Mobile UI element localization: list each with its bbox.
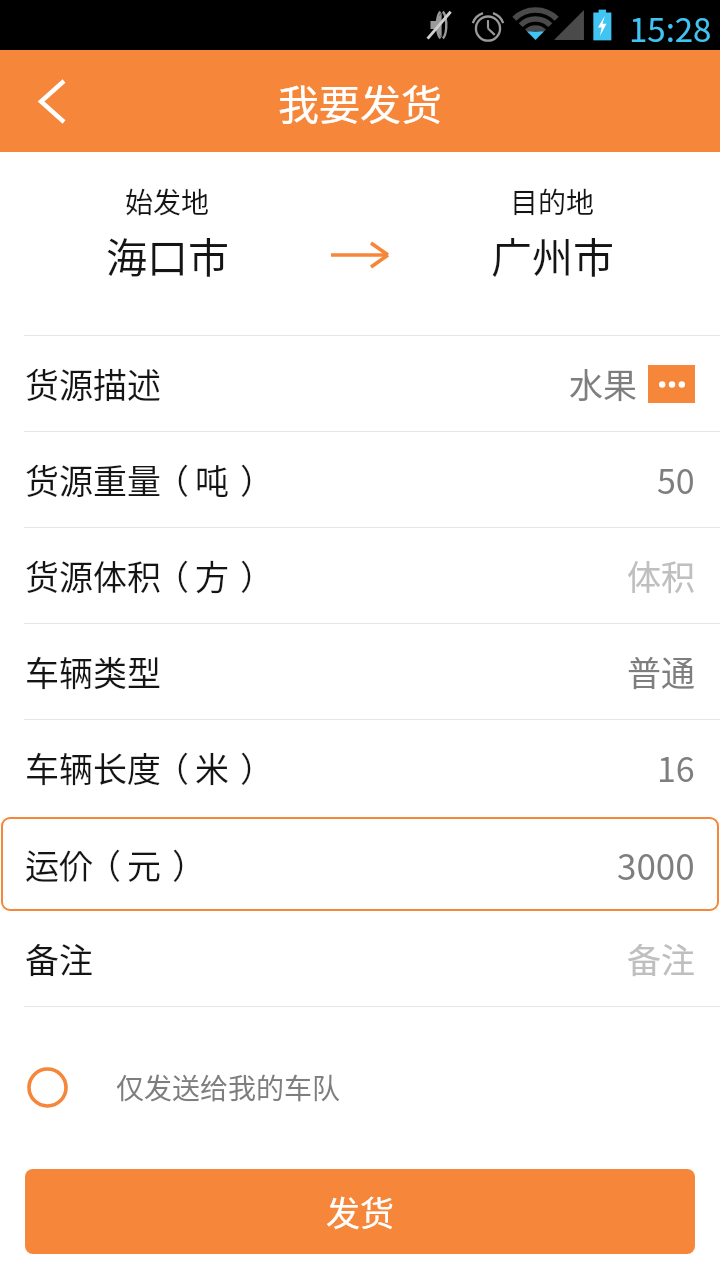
staticText: 货源重量 <box>25 455 161 504</box>
staticText: 体积 <box>627 551 695 600</box>
button[interactable]: 运价 <box>1 817 719 911</box>
button[interactable]: 货源描述 <box>0 336 720 431</box>
staticText: 普通 <box>627 647 695 696</box>
staticText: 货源体积 <box>25 551 161 600</box>
staticText: （ <box>155 551 189 600</box>
staticText: ） <box>240 551 274 600</box>
staticText: 16 <box>657 743 695 792</box>
staticText: 方 <box>195 551 229 600</box>
staticText: 3000 <box>617 839 695 890</box>
button[interactable]: 货源重量 <box>0 432 720 527</box>
button[interactable]: 货源体积 <box>0 528 720 623</box>
staticText: 15:28 <box>629 4 712 52</box>
button[interactable]: 车辆长度 <box>0 720 720 815</box>
staticText: 元 <box>127 840 161 889</box>
staticText: 广州市 <box>491 225 614 284</box>
staticText: ） <box>240 743 274 792</box>
staticText: 发货 <box>326 1187 394 1236</box>
staticText: 货源描述 <box>25 359 161 408</box>
staticText: 备注 <box>25 934 93 983</box>
staticText: 50 <box>657 455 695 504</box>
staticText: 吨 <box>195 455 229 504</box>
staticText: （ <box>155 455 189 504</box>
staticText: 目的地 <box>510 181 595 222</box>
staticText: 我要发货 <box>278 72 442 131</box>
staticText: 运价 <box>25 840 93 889</box>
staticText: 车辆长度 <box>25 743 161 792</box>
staticText: 备注 <box>627 934 695 983</box>
staticText: （ <box>155 743 189 792</box>
button[interactable]: 车辆类型 <box>0 624 720 719</box>
button[interactable]: 发货 <box>25 1169 695 1254</box>
staticText: （ <box>87 840 121 889</box>
button[interactable]: Send only to my fleet <box>0 1057 720 1117</box>
staticText: 水果 <box>569 359 637 408</box>
button[interactable]: More options <box>648 365 695 403</box>
staticText: 米 <box>195 743 229 792</box>
staticText: ） <box>172 840 206 889</box>
staticText: 海口市 <box>106 225 229 284</box>
staticText: 仅发送给我的车队 <box>116 1067 341 1108</box>
button[interactable]: Back <box>0 50 104 152</box>
staticText: 车辆类型 <box>25 647 161 696</box>
staticText: 始发地 <box>125 181 210 222</box>
staticText: ） <box>240 455 274 504</box>
other: Send only to my fleet <box>27 1067 68 1108</box>
button[interactable]: 备注 <box>0 911 720 1006</box>
